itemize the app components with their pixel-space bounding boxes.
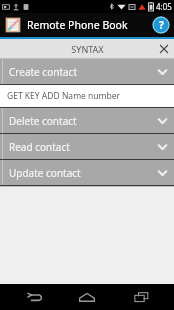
staticText: ? bbox=[159, 18, 164, 32]
button[interactable]: Recent apps bbox=[121, 284, 161, 310]
button[interactable]: Read contact bbox=[0, 134, 174, 159]
staticText: SYNTAX bbox=[71, 43, 104, 55]
staticText: GET KEY ADD Name number bbox=[7, 90, 121, 102]
staticText: Create contact bbox=[9, 65, 78, 79]
button[interactable]: Help bbox=[153, 17, 169, 33]
button[interactable]: Back bbox=[14, 284, 54, 310]
staticText: Read contact bbox=[9, 140, 70, 154]
button[interactable]: Close bbox=[154, 39, 174, 59]
staticText: 4:05 bbox=[156, 1, 172, 12]
staticText: Remote Phone Book bbox=[27, 18, 128, 32]
button[interactable]: App icon bbox=[5, 17, 21, 33]
button[interactable]: Create contact bbox=[0, 59, 174, 84]
button[interactable]: GET KEY ADD Name number bbox=[0, 85, 174, 107]
staticText: Update contact bbox=[9, 166, 81, 180]
button[interactable]: Delete contact bbox=[0, 108, 174, 133]
button[interactable]: Update contact bbox=[0, 160, 174, 185]
button[interactable]: Home bbox=[67, 284, 107, 310]
staticText: Delete contact bbox=[9, 114, 77, 128]
